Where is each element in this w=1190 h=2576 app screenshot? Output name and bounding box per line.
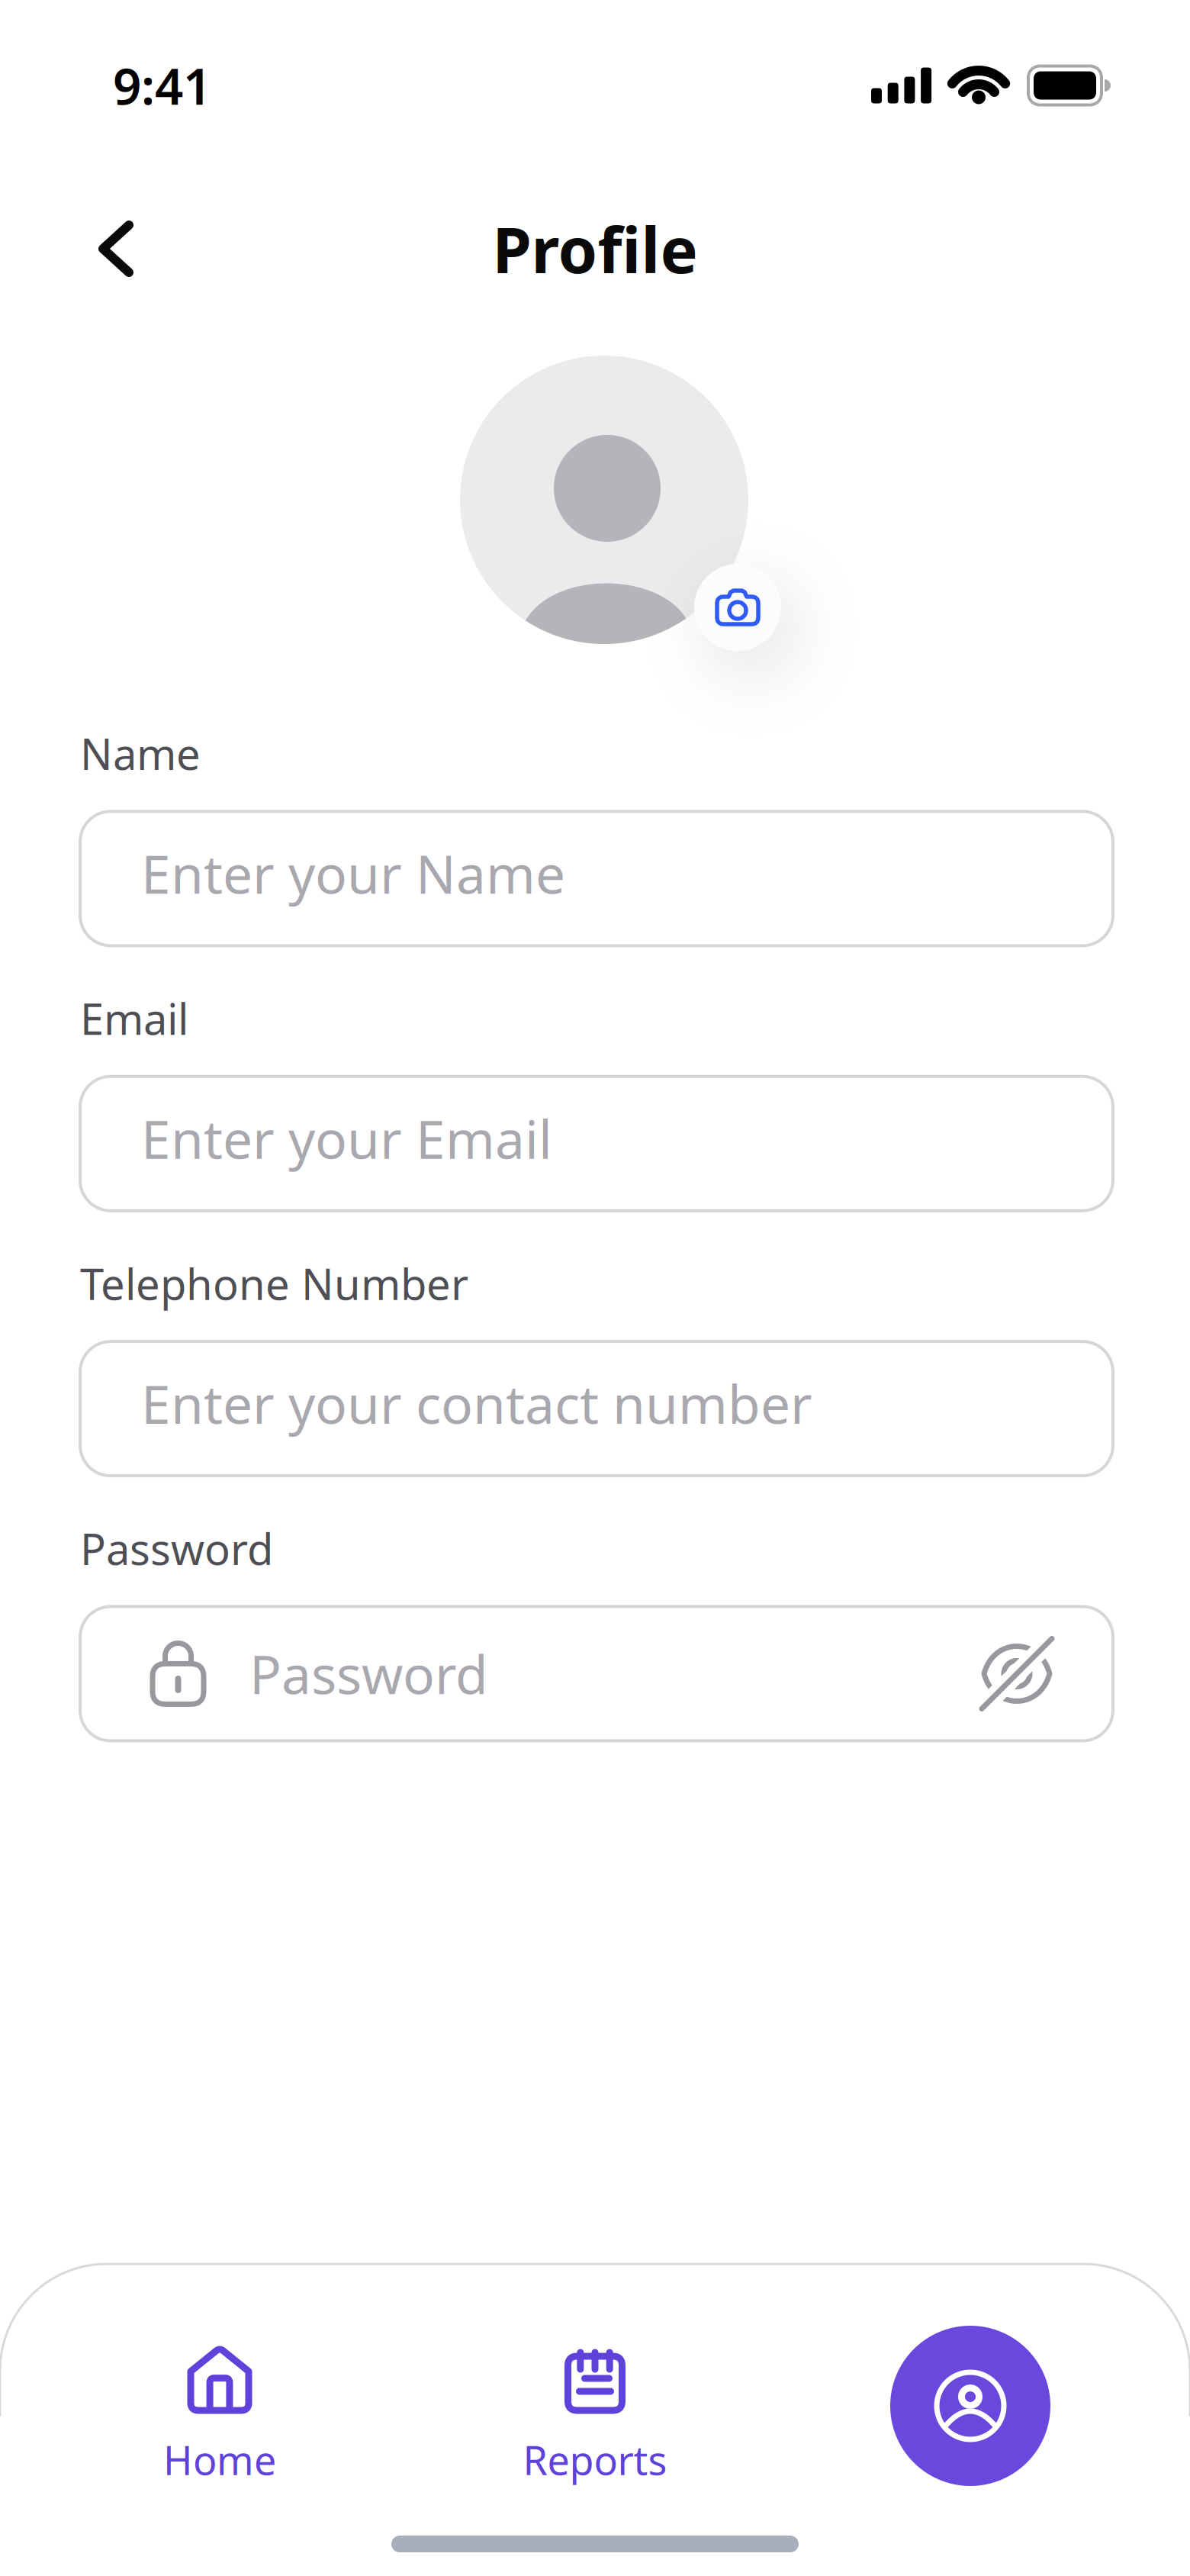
staticText: Reports (523, 2433, 667, 2486)
button[interactable]: Change photo (694, 564, 781, 651)
button[interactable]: Profile (783, 2264, 1158, 2486)
button[interactable]: Reports (407, 2264, 783, 2486)
staticText: Enter your Email (141, 1103, 552, 1173)
staticText: 9:41 (113, 52, 211, 119)
staticText: Profile (492, 207, 698, 291)
staticText: Password (80, 1520, 273, 1577)
button[interactable]: Back (0, 225, 159, 272)
textField[interactable]: Enter your Name (80, 811, 1113, 946)
textField[interactable]: Enter your Email (80, 1076, 1113, 1211)
staticText: Password (249, 1639, 488, 1709)
button[interactable]: Show password (982, 1639, 1113, 1709)
staticText: Name (80, 725, 201, 782)
textField[interactable]: Enter your contact number (80, 1341, 1113, 1476)
secureTextField[interactable]: Password (80, 1607, 1113, 1741)
staticText: Enter your contact number (141, 1368, 812, 1438)
staticText: Enter your Name (141, 838, 565, 908)
staticText: Email (80, 990, 188, 1047)
button[interactable]: Home (32, 2264, 407, 2486)
staticText: Telephone Number (80, 1255, 468, 1312)
staticText: Home (163, 2433, 276, 2486)
